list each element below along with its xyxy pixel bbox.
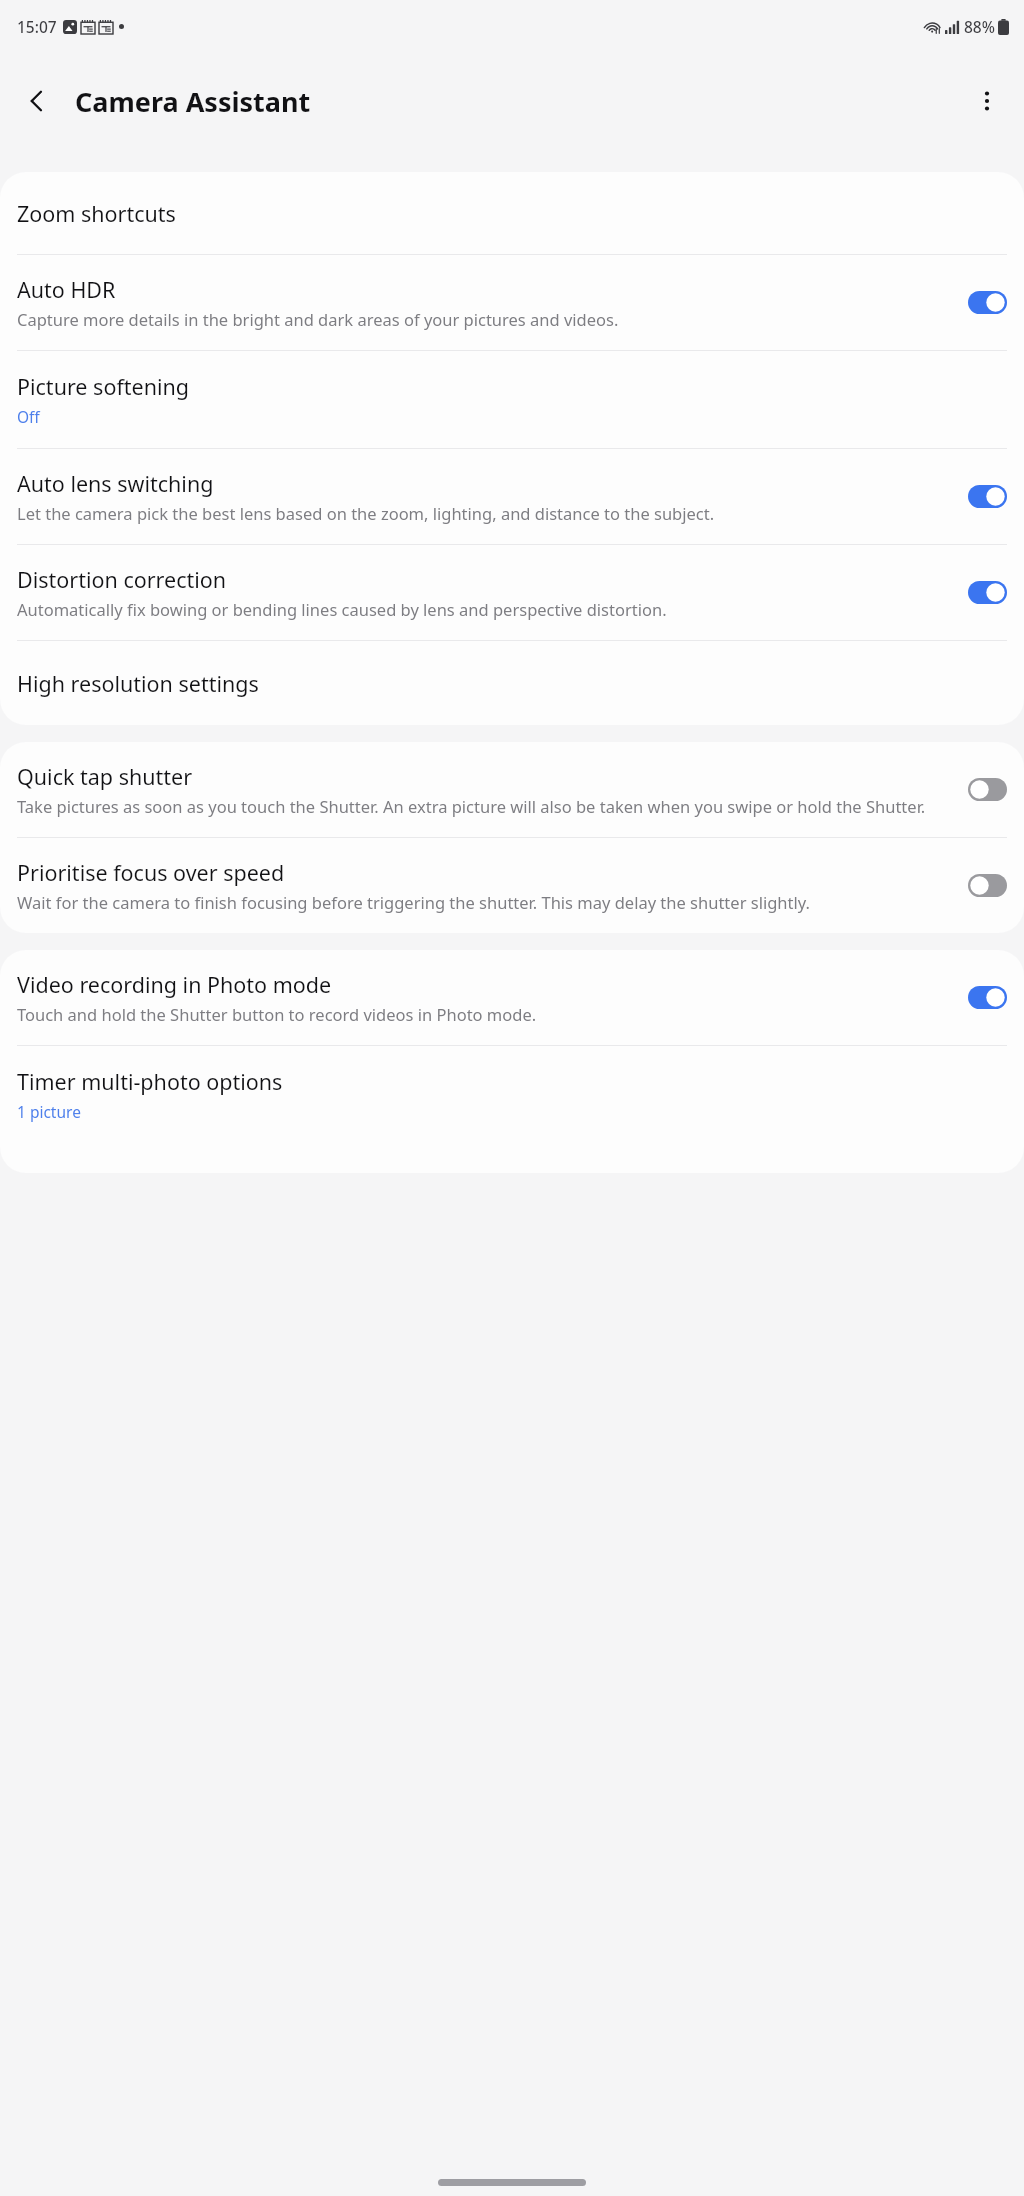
staticText: Take pictures as soon as you touch the S…: [17, 795, 926, 817]
button[interactable]: Off: [968, 778, 1007, 801]
button[interactable]: Picture softening: [0, 351, 1024, 448]
button[interactable]: On: [968, 581, 1007, 604]
staticText: Timer multi-photo options: [17, 1067, 283, 1096]
staticText: Wait for the camera to finish focusing b…: [17, 891, 810, 913]
button[interactable]: Prioritise focus over speed: [0, 838, 1024, 933]
staticText: 15:07: [17, 16, 57, 37]
staticText: Prioritise focus over speed: [17, 858, 285, 887]
staticText: 88%: [964, 16, 995, 37]
button[interactable]: On: [968, 291, 1007, 314]
button[interactable]: High resolution settings: [0, 641, 1024, 725]
staticText: Distortion correction: [17, 565, 227, 594]
staticText: Off: [17, 406, 40, 427]
staticText: Touch and hold the Shutter button to rec…: [17, 1003, 537, 1025]
button[interactable]: On: [968, 986, 1007, 1009]
button[interactable]: Off: [968, 874, 1007, 897]
button[interactable]: On: [968, 485, 1007, 508]
staticText: Auto HDR: [17, 275, 116, 304]
button[interactable]: Video recording in Photo mode: [0, 950, 1024, 1045]
staticText: Camera Assistant: [75, 83, 311, 120]
staticText: Auto lens switching: [17, 469, 214, 498]
button[interactable]: Distortion correction: [0, 545, 1024, 640]
staticText: Automatically fix bowing or bending line…: [17, 598, 667, 620]
button[interactable]: Auto HDR: [0, 255, 1024, 350]
staticText: Capture more details in the bright and d…: [17, 308, 619, 330]
button[interactable]: Zoom shortcuts: [0, 172, 1024, 254]
staticText: Let the camera pick the best lens based …: [17, 502, 715, 524]
button[interactable]: Back: [10, 74, 64, 128]
staticText: Quick tap shutter: [17, 762, 193, 791]
button[interactable]: More options: [960, 74, 1014, 128]
staticText: High resolution settings: [17, 669, 259, 698]
button[interactable]: Quick tap shutter: [0, 742, 1024, 837]
staticText: Video recording in Photo mode: [17, 970, 332, 999]
staticText: Zoom shortcuts: [17, 199, 176, 228]
staticText: 1 picture: [17, 1101, 81, 1122]
staticText: Picture softening: [17, 372, 190, 401]
button[interactable]: Timer multi-photo options: [0, 1046, 1024, 1143]
button[interactable]: Auto lens switching: [0, 449, 1024, 544]
